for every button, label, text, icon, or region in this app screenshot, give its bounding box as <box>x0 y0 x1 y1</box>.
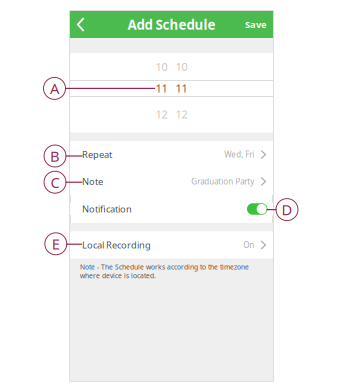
staticText: B <box>50 146 60 166</box>
staticText: Repeat <box>82 148 112 161</box>
staticText: 10 <box>175 59 187 74</box>
button[interactable]: Save <box>239 10 273 39</box>
staticText: Notification <box>82 203 132 215</box>
staticText: 11 <box>155 81 167 96</box>
staticText: Note <box>82 175 103 188</box>
staticText: C <box>50 172 59 192</box>
staticText: 10 <box>155 59 167 74</box>
button[interactable]: Note <box>70 168 273 195</box>
button[interactable]: Notification toggle <box>247 203 267 215</box>
button[interactable]: Repeat <box>70 141 273 168</box>
button[interactable]: Back <box>70 11 91 38</box>
staticText: 11 <box>175 81 187 96</box>
staticText: Add Schedule <box>127 16 215 33</box>
staticText: On <box>243 240 254 250</box>
staticText: D <box>281 200 292 219</box>
staticText: Save <box>245 18 267 31</box>
staticText: A <box>50 79 59 98</box>
staticText: E <box>52 234 60 254</box>
staticText: Note - The Schedule works according to t… <box>80 262 249 280</box>
button[interactable]: Local Recording <box>70 231 273 258</box>
staticText: Wed, Fri <box>224 149 254 160</box>
staticText: Local Recording <box>82 239 151 251</box>
staticText: Graduation Party <box>191 176 254 187</box>
staticText: 12 <box>155 107 167 122</box>
staticText: 12 <box>175 107 187 122</box>
